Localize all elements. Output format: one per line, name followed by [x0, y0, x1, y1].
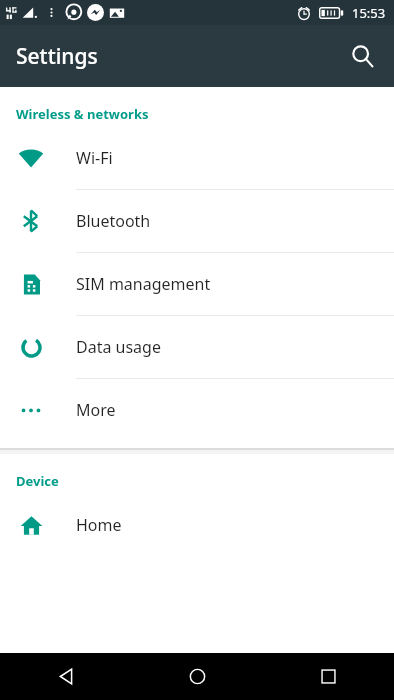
- staticText: Device: [16, 472, 59, 490]
- staticText: SIM management: [76, 273, 211, 295]
- button[interactable]: Home: [0, 494, 394, 556]
- button[interactable]: Wi-Fi: [0, 127, 394, 189]
- staticText: Home: [76, 514, 122, 536]
- button[interactable]: More: [0, 379, 394, 441]
- staticText: More: [76, 399, 116, 421]
- button[interactable]: SIM management: [0, 253, 394, 315]
- staticText: Data usage: [76, 336, 161, 358]
- staticText: Wireless & networks: [16, 105, 149, 123]
- button[interactable]: Recent apps: [263, 653, 394, 700]
- button[interactable]: Back: [0, 653, 132, 700]
- staticText: 15:53: [352, 4, 386, 22]
- staticText: Wi-Fi: [76, 147, 113, 169]
- staticText: Bluetooth: [76, 210, 151, 232]
- button[interactable]: Home: [132, 653, 263, 700]
- button[interactable]: Data usage: [0, 316, 394, 378]
- staticText: Settings: [16, 42, 98, 71]
- button[interactable]: Bluetooth: [0, 190, 394, 252]
- button[interactable]: Search: [340, 34, 384, 78]
